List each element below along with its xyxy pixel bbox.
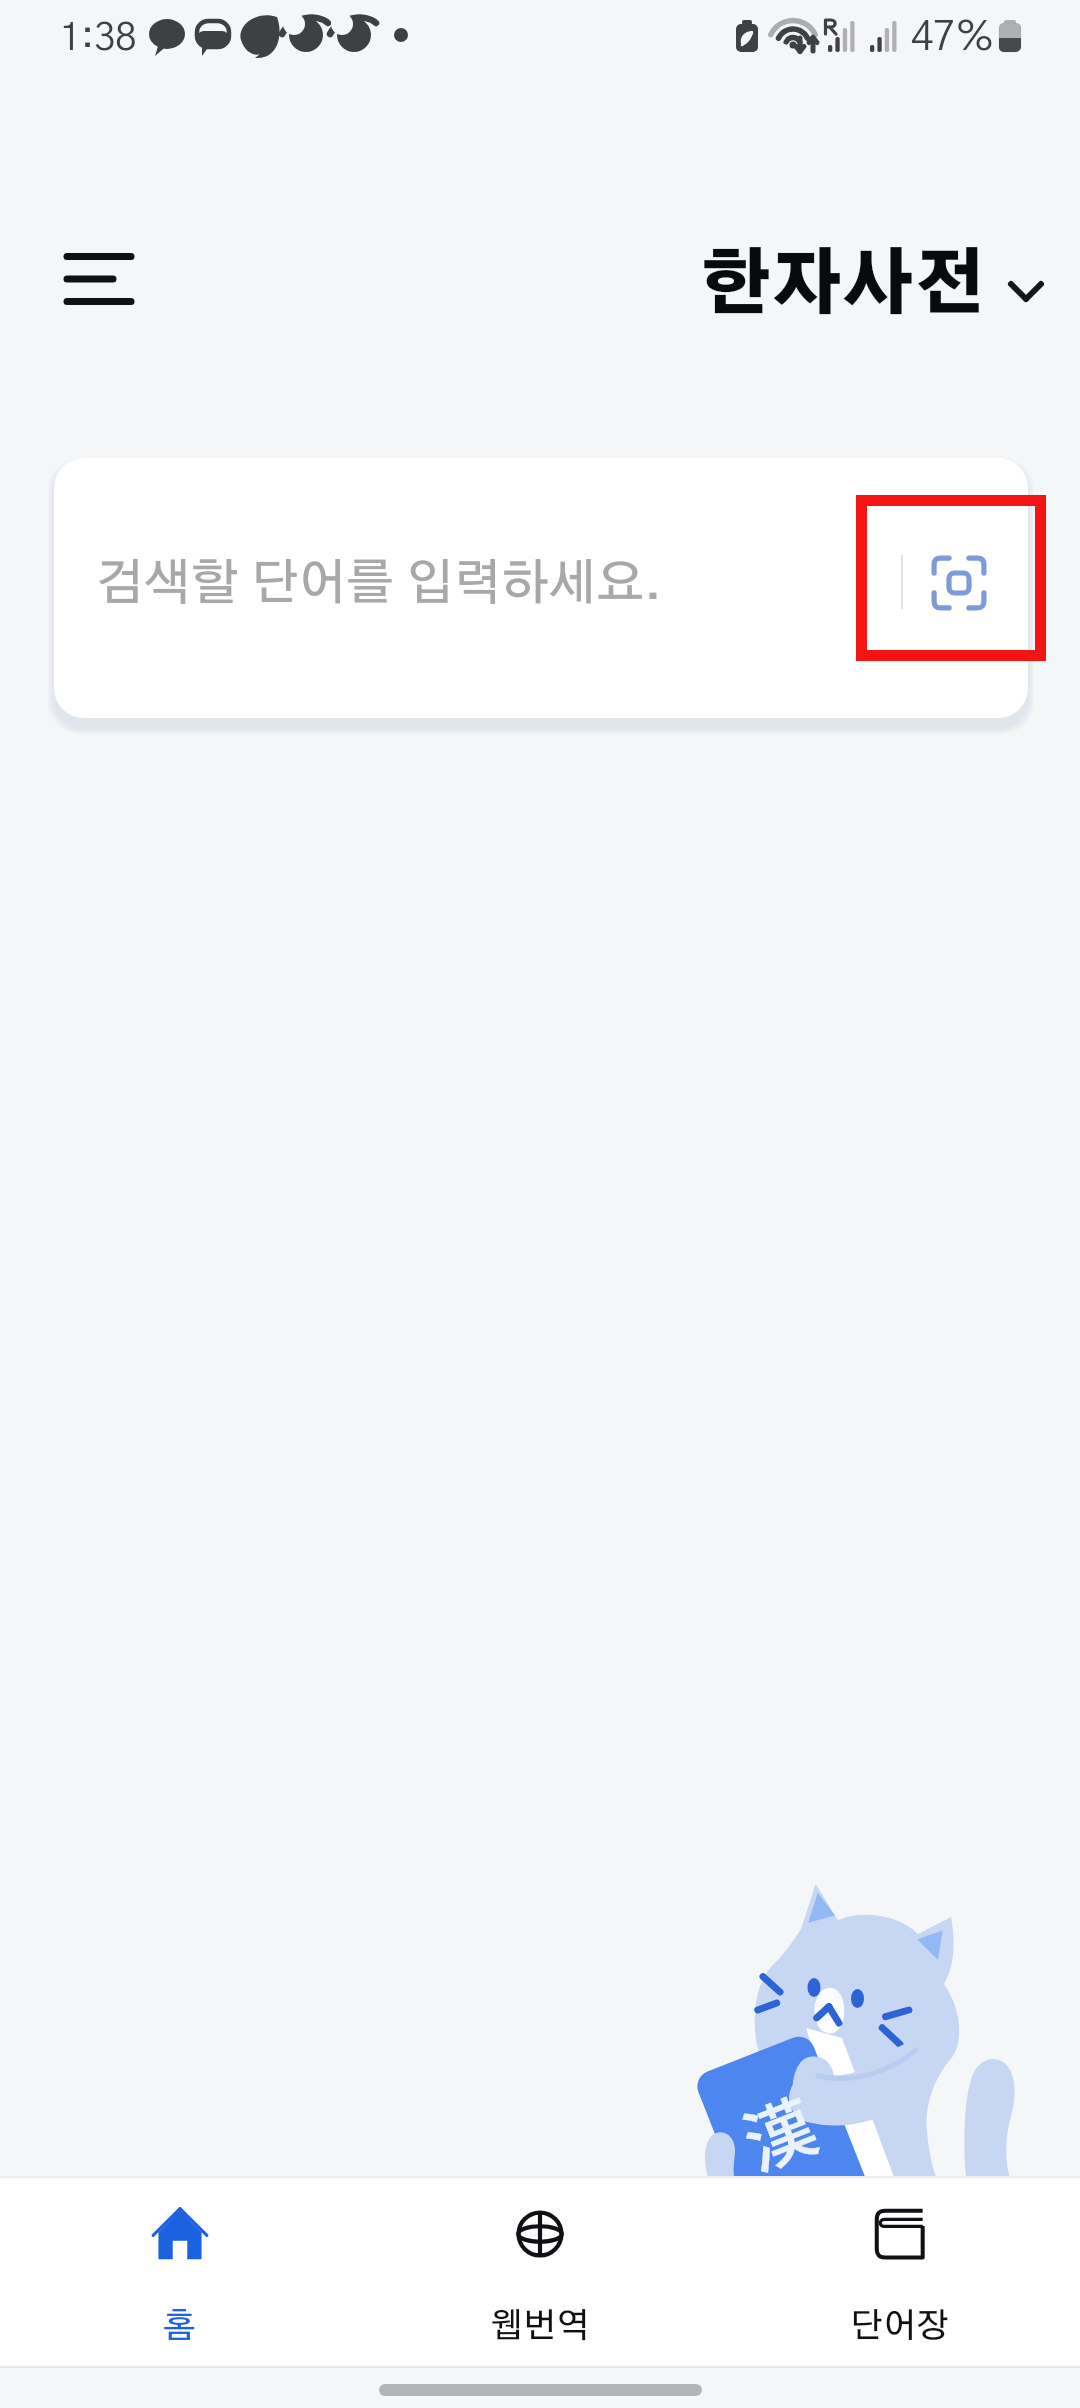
staticText: 한자사전 [700, 252, 986, 322]
button[interactable]: 웹번역 [360, 2178, 720, 2364]
staticText: 47% [911, 18, 995, 58]
staticText: 1:38 [60, 20, 137, 58]
staticText: 단어장 [850, 2310, 950, 2344]
button[interactable]: 한자사전 [700, 237, 1044, 337]
staticText: 홈 [163, 2310, 197, 2344]
button[interactable]: 단어장 [720, 2178, 1080, 2364]
button[interactable]: 검색할 단어를 입력하세요. [54, 458, 1028, 718]
staticText: 웹번역 [490, 2310, 590, 2344]
button[interactable]: Menu [55, 234, 145, 324]
button[interactable]: Scan text [931, 555, 987, 611]
button[interactable]: 홈 [0, 2178, 360, 2364]
staticText: 漢 [727, 2071, 829, 2189]
staticText: 검색할 단어를 입력하세요. [96, 560, 662, 609]
